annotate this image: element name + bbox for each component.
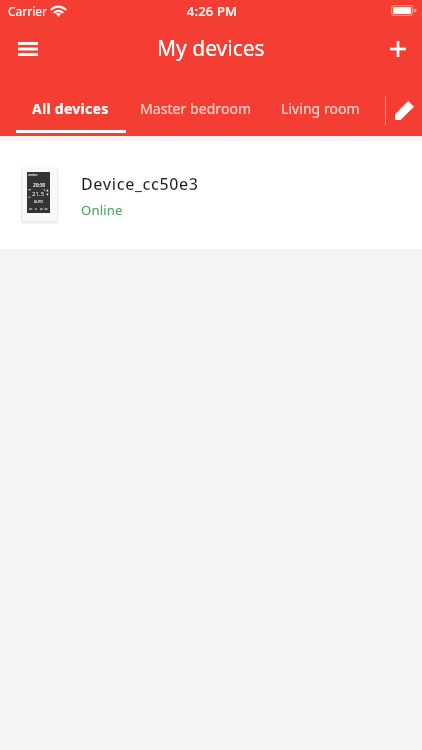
button[interactable]: All devices: [8, 75, 133, 135]
staticText: Living room: [281, 99, 360, 118]
staticText: My devices: [157, 34, 265, 63]
staticText: Online: [81, 201, 123, 219]
staticText: Device_cc50e3: [81, 173, 199, 195]
button[interactable]: Edit rooms: [386, 92, 422, 128]
button[interactable]: Living room: [258, 75, 383, 135]
staticText: aeotec: [28, 173, 38, 177]
button[interactable]: Add device: [377, 28, 419, 70]
staticText: 21.5: [32, 189, 45, 197]
staticText: Carrier: [8, 3, 48, 19]
staticText: All devices: [32, 99, 109, 118]
staticText: Master bedroom: [140, 99, 252, 118]
staticText: 4:26 PM: [1, 2, 422, 20]
button[interactable]: aeotec: [0, 141, 422, 249]
staticText: AUTO: [34, 199, 44, 204]
button[interactable]: Master bedroom: [133, 75, 258, 135]
staticText: 20:30: [33, 182, 46, 189]
button[interactable]: Menu: [7, 28, 49, 70]
